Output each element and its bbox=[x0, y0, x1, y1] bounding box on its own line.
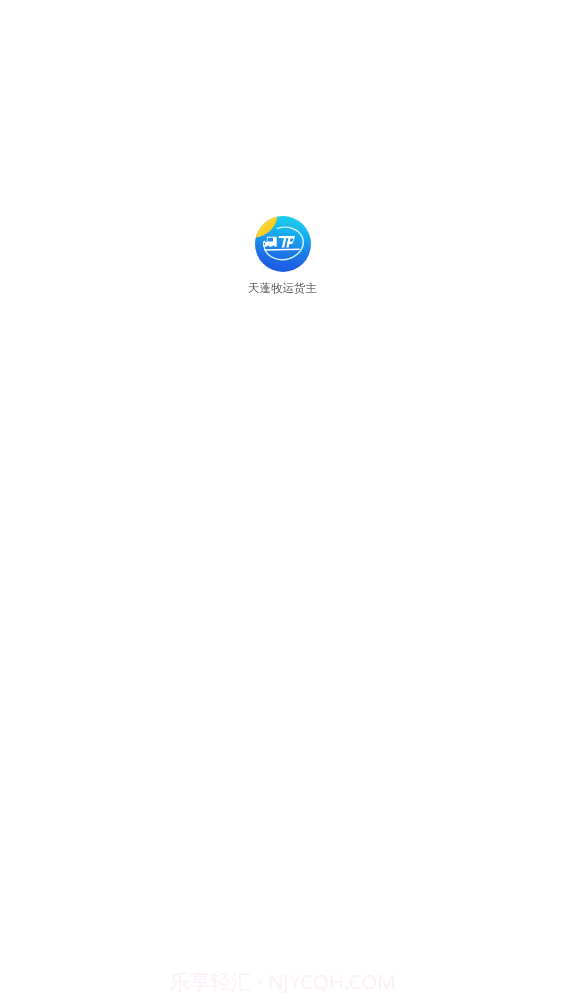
staticText: 乐享轻汇 · NJYCQH.COM bbox=[169, 967, 396, 995]
staticText: 天蓬牧运货主 bbox=[248, 281, 317, 295]
